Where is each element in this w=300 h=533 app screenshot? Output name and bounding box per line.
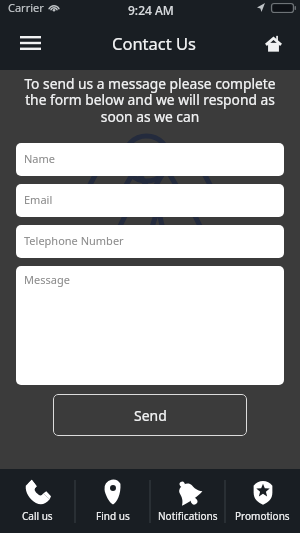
staticText: Telephone Number	[24, 233, 124, 248]
staticText: Carrier	[8, 0, 44, 15]
button[interactable]: Notifications	[150, 469, 225, 533]
button[interactable]: Message	[16, 266, 284, 385]
staticText: Find us	[96, 509, 130, 523]
button[interactable]: Call us	[0, 469, 75, 533]
staticText: Message	[24, 272, 70, 287]
button[interactable]: Name	[16, 143, 284, 176]
staticText: Email	[24, 192, 53, 207]
staticText: 9:24 AM	[128, 2, 174, 18]
button[interactable]: Telephone Number	[16, 225, 284, 258]
staticText: Call us	[22, 509, 53, 523]
button[interactable]: Send	[53, 394, 247, 436]
button[interactable]: Find us	[75, 469, 150, 533]
button[interactable]: Promotions	[225, 469, 300, 533]
staticText: Send	[134, 406, 167, 425]
staticText: Name	[24, 151, 56, 166]
button[interactable]: Email	[16, 184, 284, 217]
staticText: Contact Us	[112, 32, 196, 54]
button[interactable]: Home	[255, 25, 291, 61]
staticText: Promotions	[235, 509, 290, 523]
button[interactable]: Menu	[12, 25, 48, 61]
staticText: Notifications	[158, 509, 218, 523]
staticText: To send us a message please complete the…	[18, 74, 282, 126]
